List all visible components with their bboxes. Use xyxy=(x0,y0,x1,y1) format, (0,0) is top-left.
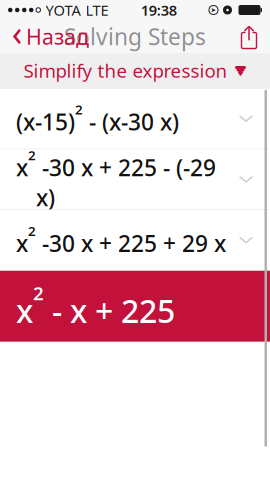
staticText: (x-15) xyxy=(16,107,75,137)
staticText: 2 xyxy=(75,101,83,118)
staticText: -30 x + 225 + 29 x xyxy=(36,228,226,258)
staticText: x xyxy=(16,228,28,258)
staticText: - (x-30 x) xyxy=(83,107,179,137)
staticText: LTE xyxy=(85,0,108,20)
staticText: Simplify the expression xyxy=(23,58,227,83)
staticText: 2 xyxy=(33,281,44,305)
button[interactable]: Share xyxy=(232,19,266,53)
staticText: - x + 225 xyxy=(44,289,175,332)
staticText: 2 xyxy=(28,222,36,240)
staticText: -30 x + 225 - (-29 x) xyxy=(36,152,216,213)
button[interactable]: x xyxy=(0,149,270,209)
staticText: 19:38 xyxy=(141,0,177,20)
staticText: 2 xyxy=(28,146,36,164)
button[interactable]: x xyxy=(0,210,270,270)
staticText: Назад xyxy=(26,22,89,51)
staticText: Solving Steps xyxy=(64,21,206,51)
button[interactable]: Назад xyxy=(4,20,96,52)
staticText: ➤ xyxy=(210,6,216,14)
button[interactable]: Simplify the expression xyxy=(0,53,270,88)
staticText: x xyxy=(16,289,33,332)
staticText: YOTA xyxy=(45,0,80,20)
button[interactable]: (x-15) xyxy=(0,89,270,149)
button[interactable]: x xyxy=(0,271,270,342)
staticText: x xyxy=(16,152,28,182)
